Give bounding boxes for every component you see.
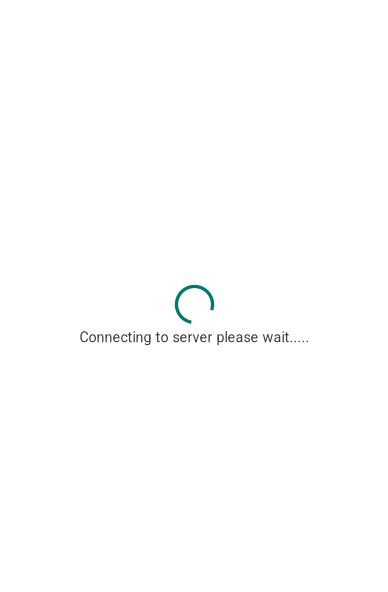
staticText: Connecting to server please wait..... [80,329,310,346]
